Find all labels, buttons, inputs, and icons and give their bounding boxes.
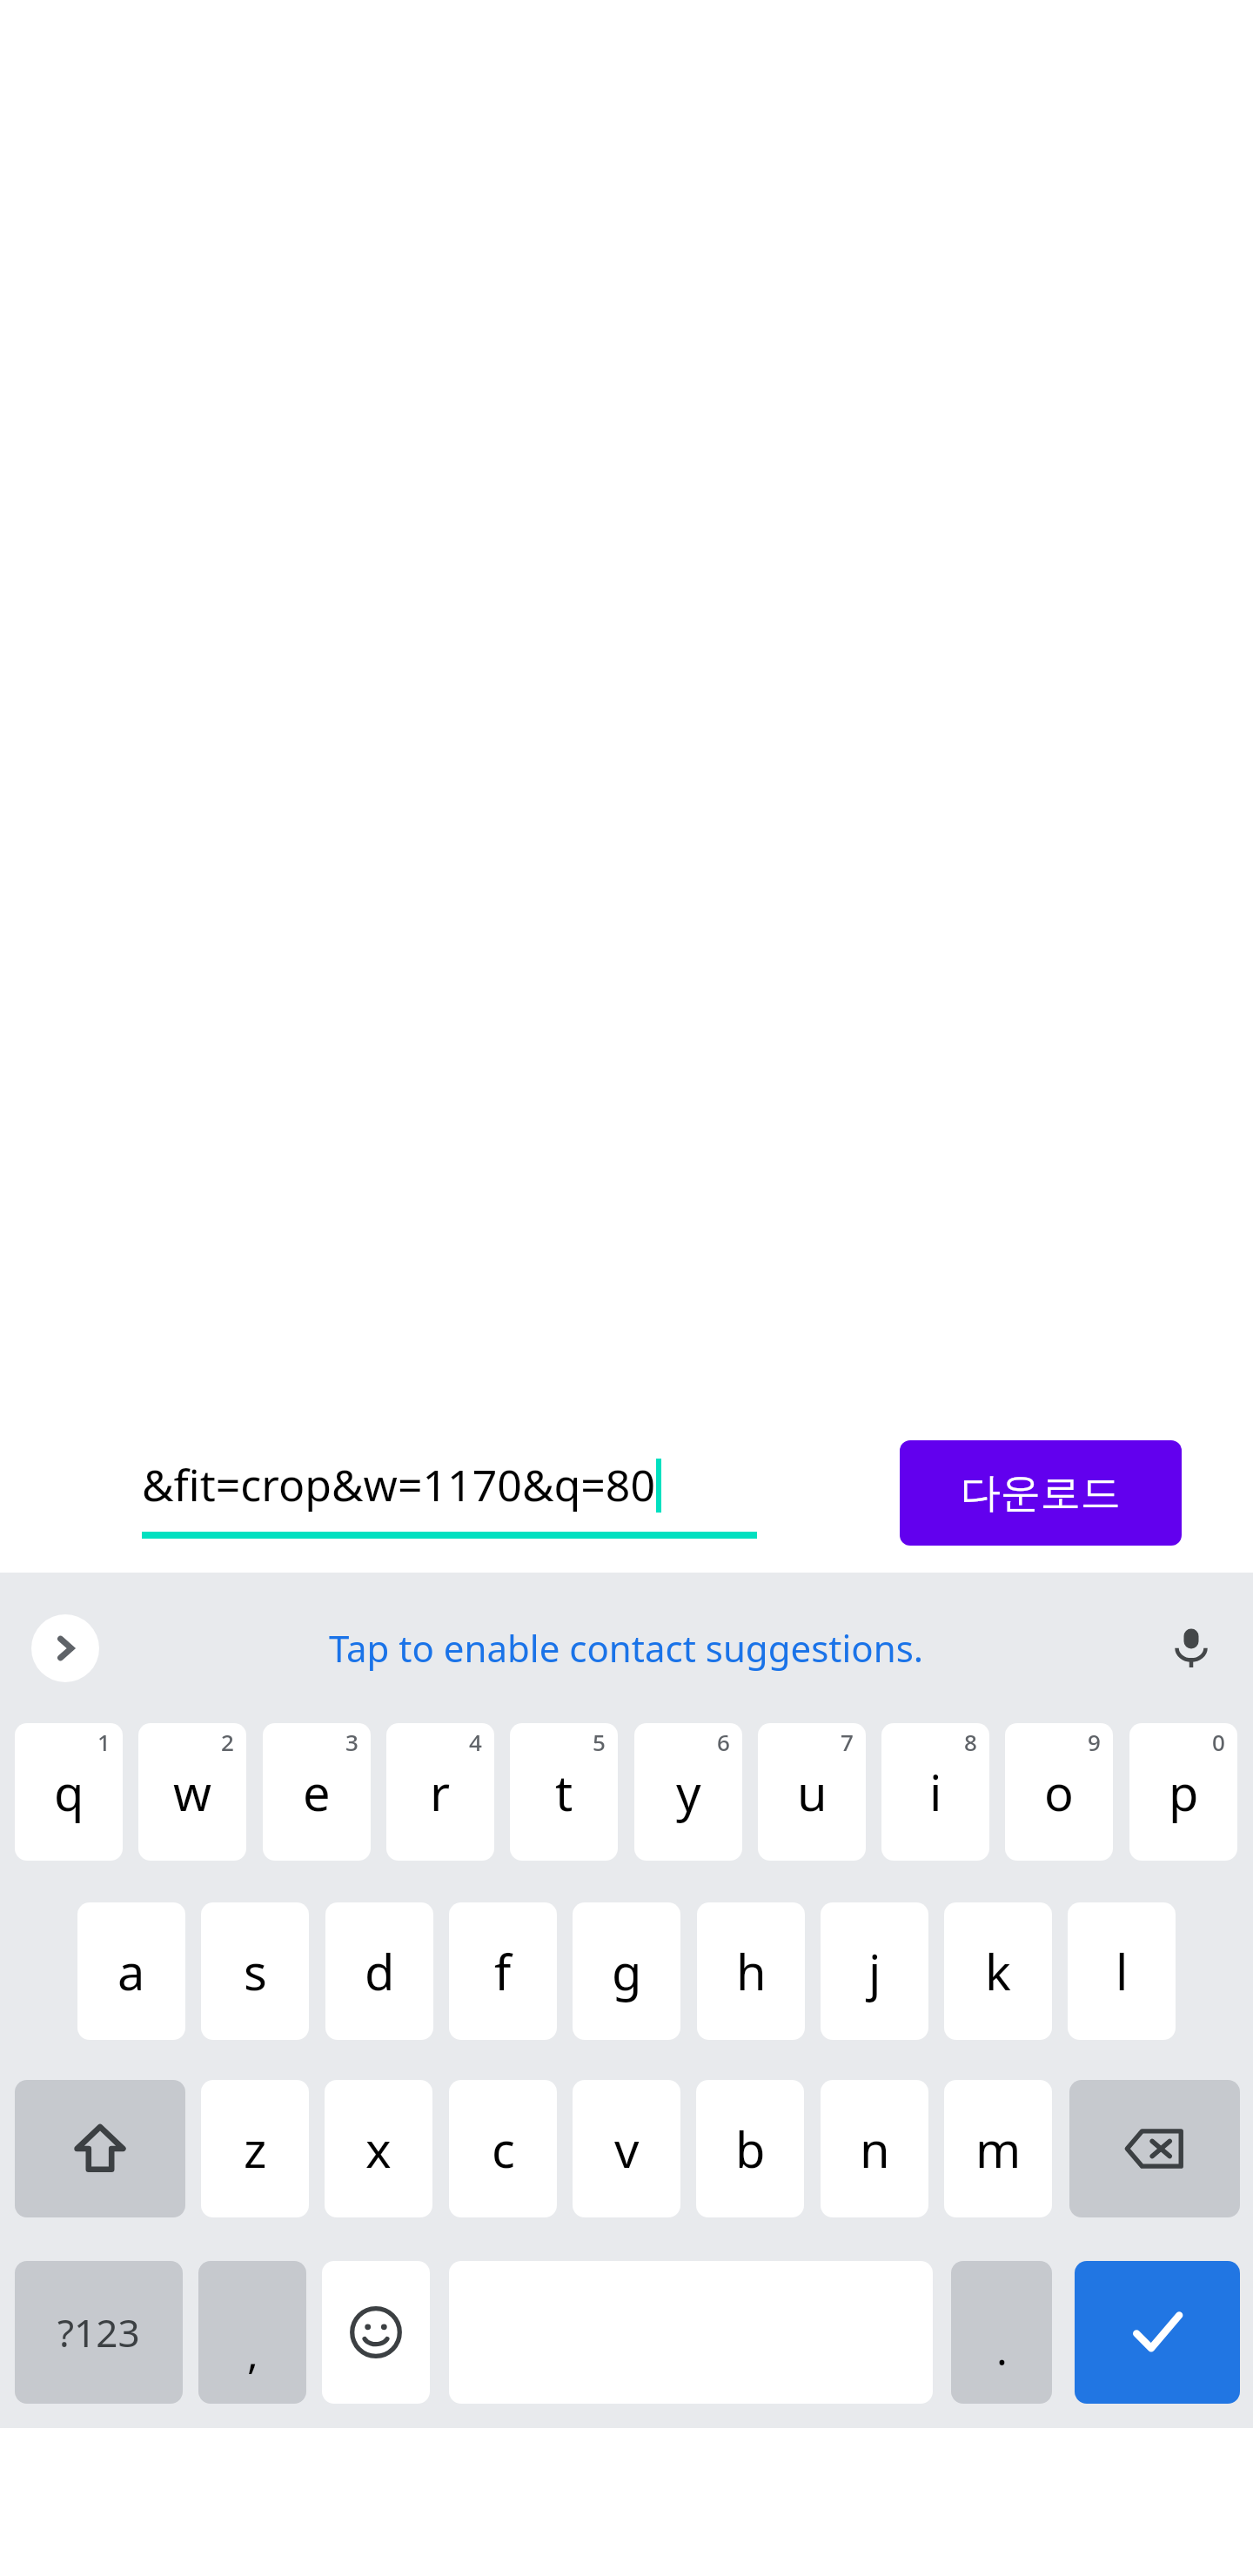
button[interactable]: y [634, 1723, 742, 1861]
staticText: s [244, 1938, 267, 2004]
staticText: e [303, 1759, 331, 1825]
button[interactable]: . [951, 2261, 1052, 2404]
staticText: u [797, 1759, 828, 1825]
staticText: m [975, 2116, 1022, 2182]
staticText: l [1116, 1938, 1129, 2004]
staticText: k [985, 1938, 1011, 2004]
button[interactable]: s [201, 1902, 309, 2040]
button[interactable]: c [449, 2080, 557, 2217]
button[interactable]: j [821, 1902, 928, 2040]
staticText: , [247, 2324, 258, 2381]
button[interactable]: l [1068, 1902, 1176, 2040]
button[interactable]: u [758, 1723, 866, 1861]
staticText: r [430, 1759, 451, 1825]
staticText: 6 [717, 1727, 730, 1757]
staticText: 1 [97, 1727, 111, 1757]
button[interactable]: n [821, 2080, 928, 2217]
button[interactable]: Tap to enable contact suggestions. [308, 1614, 945, 1681]
staticText: Tap to enable contact suggestions. [329, 1623, 924, 1673]
button[interactable]: h [697, 1902, 805, 2040]
button[interactable]: 다운로드 [900, 1440, 1182, 1546]
staticText: z [244, 2116, 267, 2182]
button[interactable]: e [263, 1723, 371, 1861]
button[interactable]: m [944, 2080, 1052, 2217]
staticText: 2 [221, 1727, 234, 1757]
staticText: 0 [1212, 1727, 1225, 1757]
button[interactable]: g [573, 1902, 680, 2040]
button[interactable]: x [325, 2080, 432, 2217]
staticText: n [860, 2116, 890, 2182]
button[interactable]: &fit=crop&w=1170&q=80 [142, 1455, 757, 1539]
staticText: 다운로드 [961, 1468, 1121, 1519]
button[interactable]: Done [1075, 2261, 1240, 2404]
staticText: t [555, 1759, 573, 1825]
button[interactable]: Emoji [322, 2261, 430, 2404]
button[interactable]: o [1005, 1723, 1113, 1861]
button[interactable]: z [201, 2080, 309, 2217]
staticText: g [612, 1938, 642, 2004]
button[interactable]: r [386, 1723, 494, 1861]
staticText: 7 [841, 1727, 854, 1757]
button[interactable]: , [198, 2261, 306, 2404]
staticText: j [868, 1938, 881, 2004]
staticText: d [365, 1938, 395, 2004]
staticText: b [735, 2116, 766, 2182]
button[interactable]: Voice input [1157, 1614, 1225, 1682]
staticText: ?123 [57, 2306, 140, 2358]
button[interactable]: w [138, 1723, 246, 1861]
staticText: 5 [593, 1727, 606, 1757]
button[interactable]: Backspace [1069, 2080, 1240, 2217]
button[interactable]: a [77, 1902, 185, 2040]
staticText: v [614, 2116, 640, 2182]
staticText: . [996, 2321, 1008, 2378]
button[interactable]: p [1129, 1723, 1237, 1861]
button[interactable]: d [325, 1902, 433, 2040]
staticText: 8 [964, 1727, 977, 1757]
staticText: y [676, 1759, 701, 1825]
button[interactable]: t [510, 1723, 618, 1861]
staticText: p [1169, 1759, 1199, 1825]
staticText: a [117, 1938, 145, 2004]
staticText: f [494, 1938, 512, 2004]
button[interactable]: b [696, 2080, 804, 2217]
button[interactable]: ?123 [15, 2261, 183, 2404]
button[interactable]: i [881, 1723, 989, 1861]
staticText: 4 [469, 1727, 482, 1757]
staticText: w [173, 1759, 212, 1825]
staticText: &fit=crop&w=1170&q=80 [142, 1455, 656, 1514]
staticText: 3 [345, 1727, 358, 1757]
staticText: o [1044, 1759, 1074, 1825]
button[interactable]: Shift [15, 2080, 185, 2217]
button[interactable]: k [944, 1902, 1052, 2040]
staticText: h [736, 1938, 767, 2004]
staticText: q [54, 1759, 84, 1825]
button[interactable]: Expand suggestions [31, 1614, 99, 1682]
button[interactable]: v [573, 2080, 680, 2217]
button[interactable]: q [15, 1723, 123, 1861]
staticText: x [365, 2116, 392, 2182]
staticText: i [929, 1759, 942, 1825]
button[interactable]: f [449, 1902, 557, 2040]
staticText: c [492, 2116, 515, 2182]
staticText: 9 [1088, 1727, 1101, 1757]
